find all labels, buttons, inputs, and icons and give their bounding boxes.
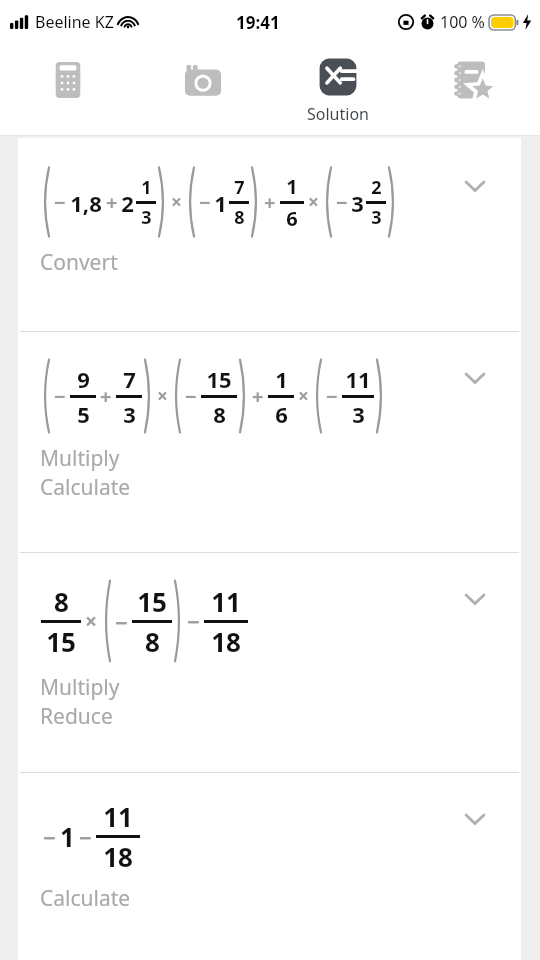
staticText: × <box>85 607 98 636</box>
other: Expand step <box>461 172 489 200</box>
staticText: 11 <box>103 799 133 834</box>
staticText: 18 <box>211 624 241 659</box>
staticText: 100 % <box>440 11 485 33</box>
staticText: 8 <box>145 624 160 659</box>
staticText: × <box>157 383 168 409</box>
staticText: 3 <box>141 205 152 230</box>
staticText: 19:41 <box>236 11 280 34</box>
staticText: 1 <box>60 819 75 854</box>
staticText: Calculate <box>40 884 131 913</box>
button[interactable]: − <box>18 773 521 960</box>
staticText: 15 <box>206 364 232 394</box>
staticText: Solution <box>307 103 369 125</box>
button[interactable]: Calculator <box>0 44 135 136</box>
staticText: − <box>43 822 56 852</box>
staticText: − <box>187 606 200 636</box>
staticText: 2 <box>371 175 382 200</box>
staticText: × <box>298 383 309 409</box>
staticText: − <box>185 383 197 410</box>
staticText: 1 <box>275 364 288 394</box>
staticText: 8 <box>234 205 245 230</box>
staticText: 8 <box>54 584 69 619</box>
staticText: Multiply <box>40 444 120 473</box>
staticText: Reduce <box>40 702 113 731</box>
staticText: 18 <box>103 839 133 874</box>
staticText: 3 <box>123 399 136 429</box>
staticText: − <box>79 822 92 852</box>
staticText: 11 <box>211 584 241 619</box>
staticText: 1 <box>286 173 298 200</box>
staticText: 3 <box>371 205 382 230</box>
staticText: 3 <box>352 399 365 429</box>
other: Expand step <box>461 364 489 392</box>
staticText: − <box>54 189 66 216</box>
staticText: 5 <box>77 399 90 429</box>
staticText: 15 <box>46 624 76 659</box>
staticText: Beeline KZ <box>35 11 114 33</box>
staticText: + <box>252 383 264 410</box>
staticText: 7 <box>234 175 245 200</box>
staticText: + <box>100 383 112 410</box>
staticText: 8 <box>213 399 226 429</box>
staticText: 6 <box>275 399 288 429</box>
staticText: − <box>199 189 211 216</box>
staticText: 15 <box>137 584 167 619</box>
staticText: + <box>264 189 276 216</box>
button[interactable]: − <box>18 138 521 332</box>
button[interactable]: − <box>18 332 521 553</box>
staticText: Multiply <box>40 673 120 702</box>
other: Expand step <box>461 805 489 833</box>
staticText: 11 <box>345 364 371 394</box>
staticText: − <box>115 607 128 637</box>
staticText: 3 <box>351 188 364 218</box>
staticText: − <box>336 189 348 216</box>
staticText: 6 <box>286 205 298 232</box>
staticText: × <box>171 189 182 215</box>
button[interactable]: 8 <box>18 553 521 773</box>
staticText: 1 <box>214 188 227 218</box>
staticText: Calculate <box>40 473 131 502</box>
staticText: + <box>106 189 118 216</box>
staticText: 9 <box>77 364 90 394</box>
staticText: − <box>54 383 66 410</box>
staticText: − <box>326 383 338 410</box>
staticText: × <box>308 189 319 215</box>
other: Expand step <box>461 585 489 613</box>
staticText: 1 <box>141 175 152 200</box>
staticText: 1,8 <box>70 188 102 218</box>
button[interactable]: Camera <box>135 44 270 136</box>
staticText: Convert <box>40 248 118 277</box>
button[interactable]: Solution <box>270 44 405 136</box>
staticText: 2 <box>121 188 134 218</box>
staticText: 7 <box>123 364 136 394</box>
button[interactable]: Saved notes <box>405 44 540 136</box>
